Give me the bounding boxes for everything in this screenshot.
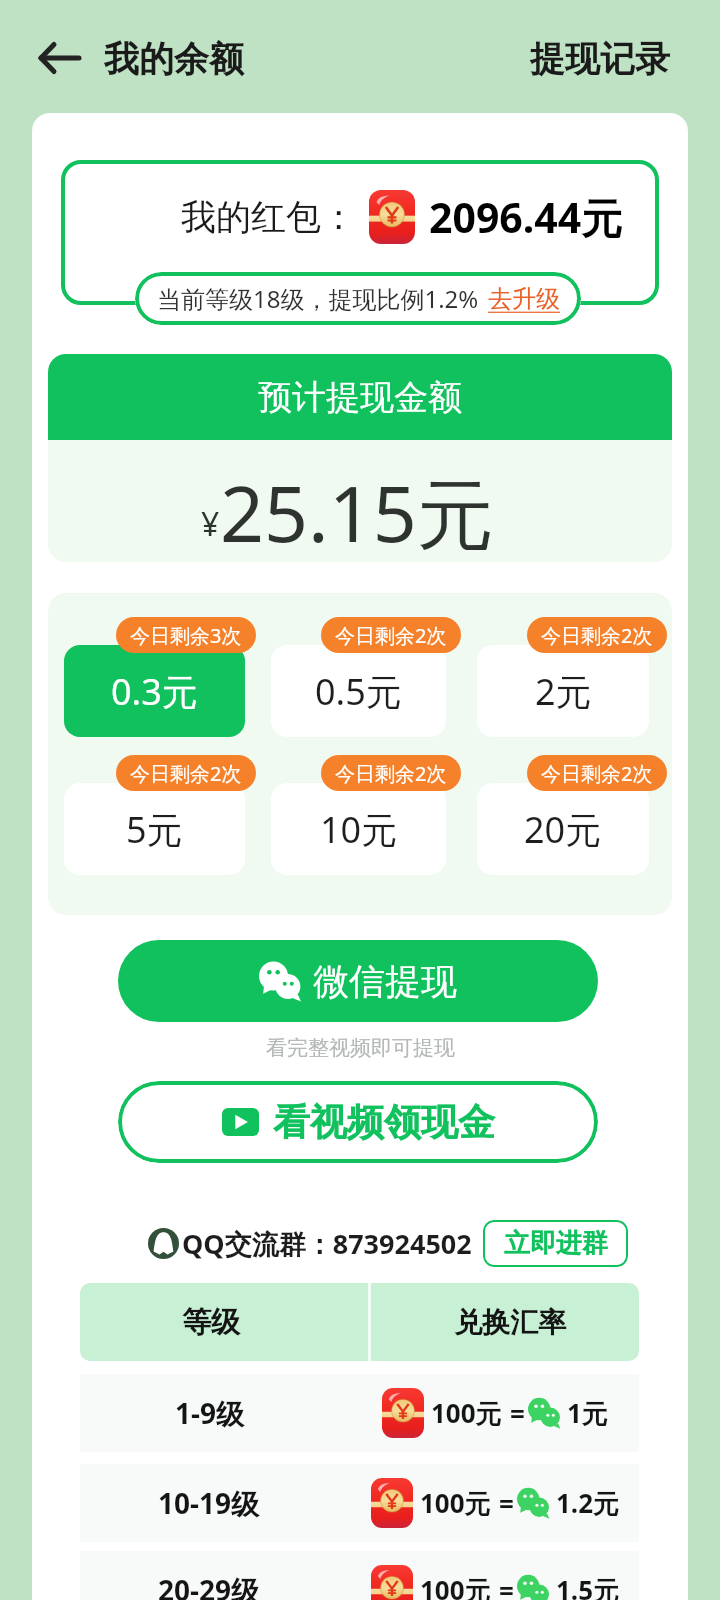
staticText: QQ交流群：873924502 [182, 1225, 472, 1262]
staticText: 0.3元 [111, 667, 198, 716]
staticText: 5元 [126, 805, 183, 854]
button[interactable]: 20元 [477, 783, 649, 875]
button[interactable]: Back [27, 34, 91, 82]
staticText: 去升级 [488, 284, 560, 314]
staticText: 20元 [524, 805, 602, 854]
staticText: 100元 [431, 1395, 502, 1431]
staticText: 等级 [182, 1304, 240, 1341]
button[interactable]: 立即进群 [483, 1220, 628, 1267]
staticText: 今日剩余2次 [541, 622, 653, 649]
staticText: 预计提现金额 [258, 376, 462, 419]
staticText: 2096.44元 [429, 189, 623, 245]
staticText: 看完整视频即可提现 [266, 1035, 455, 1061]
staticText: 100元 [420, 1572, 491, 1600]
staticText: 2元 [535, 667, 592, 716]
staticText: 1元 [567, 1395, 608, 1431]
staticText: 提现记录 [530, 37, 670, 81]
staticText: 我的红包： [181, 195, 356, 239]
staticText: 看视频领现金 [273, 1099, 495, 1146]
button[interactable]: 2元 [477, 645, 649, 737]
staticText: = [499, 1573, 514, 1600]
staticText: 20-29级 [158, 1571, 260, 1600]
staticText: 1-9级 [175, 1394, 244, 1432]
button[interactable]: 5元 [64, 783, 245, 875]
staticText: ¥ [201, 502, 220, 546]
staticText: 今日剩余2次 [335, 622, 447, 649]
staticText: 今日剩余2次 [541, 760, 653, 787]
button[interactable]: 0.3元 [64, 645, 245, 737]
staticText: 1.2元 [556, 1485, 620, 1521]
staticText: 今日剩余3次 [130, 622, 242, 649]
staticText: 10-19级 [158, 1484, 260, 1522]
staticText: 当前等级18级，提现比例1.2% [157, 282, 479, 315]
button[interactable]: 10元 [271, 783, 446, 875]
staticText: 我的余额 [104, 37, 244, 81]
staticText: 微信提现 [313, 959, 457, 1004]
staticText: 25.15元 [220, 460, 494, 550]
staticText: = [510, 1396, 525, 1431]
staticText: = [499, 1486, 514, 1521]
staticText: 今日剩余2次 [130, 760, 242, 787]
staticText: 立即进群 [504, 1227, 608, 1260]
button[interactable]: 微信提现 [118, 940, 598, 1022]
button[interactable]: 0.5元 [271, 645, 446, 737]
staticText: 0.5元 [315, 667, 402, 716]
staticText: 兑换汇率 [454, 1305, 566, 1340]
button[interactable]: 当前等级18级，提现比例1.2% [135, 272, 581, 325]
staticText: 100元 [420, 1485, 491, 1521]
staticText: 今日剩余2次 [335, 760, 447, 787]
button[interactable]: 我的余额 [104, 37, 244, 81]
button[interactable]: 提现记录 [530, 37, 670, 81]
button[interactable]: 看视频领现金 [118, 1081, 598, 1163]
staticText: 10元 [320, 805, 398, 854]
staticText: 1.5元 [556, 1572, 620, 1600]
